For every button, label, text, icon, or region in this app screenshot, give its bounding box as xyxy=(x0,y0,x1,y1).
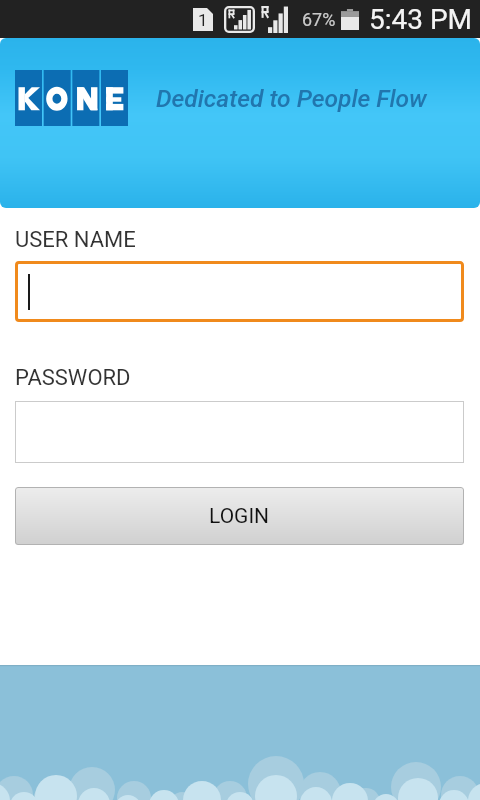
staticText: 5:43 PM xyxy=(369,3,473,36)
staticText: USER NAME xyxy=(15,227,136,253)
other: SIM 1 xyxy=(193,8,213,31)
button[interactable] xyxy=(15,261,464,322)
button[interactable]: LOGIN xyxy=(15,487,464,545)
staticText: 1 xyxy=(198,10,208,30)
staticText: PASSWORD xyxy=(15,365,131,391)
staticText: Dedicated to People Flow xyxy=(156,84,427,113)
button[interactable] xyxy=(15,401,464,463)
staticText: LOGIN xyxy=(209,504,270,529)
staticText: 67% xyxy=(302,9,336,30)
